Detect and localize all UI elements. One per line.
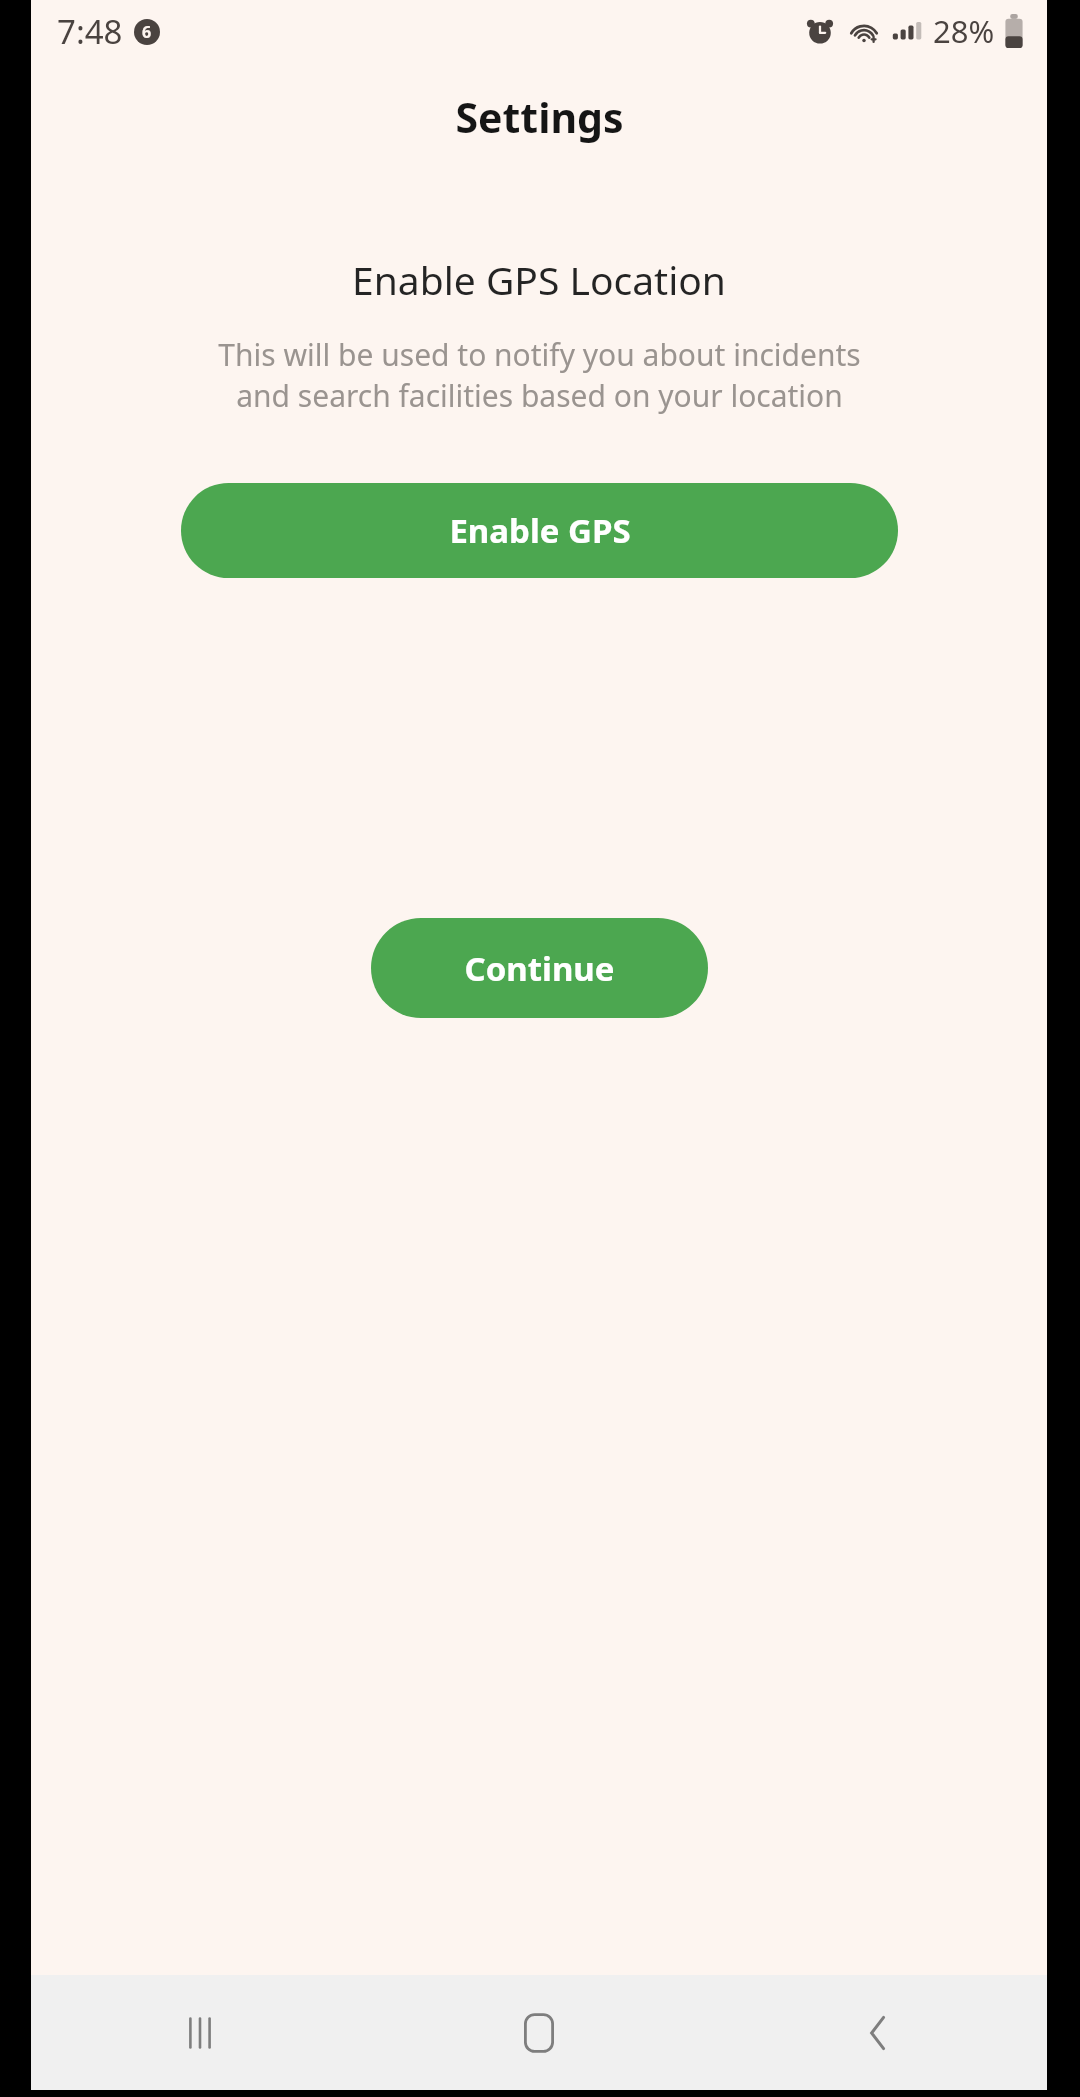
staticText: Enable GPS Location <box>352 253 726 306</box>
staticText: This will be used to notify you about in… <box>218 334 861 416</box>
button[interactable]: Recent apps <box>31 1975 369 2090</box>
staticText: 28% <box>933 10 995 52</box>
button[interactable]: Back <box>708 1975 1047 2090</box>
button[interactable]: Continue <box>371 918 708 1018</box>
button[interactable]: Home <box>369 1975 708 2090</box>
staticText: Settings <box>455 89 624 145</box>
staticText: Enable GPS <box>449 508 631 553</box>
button[interactable]: Enable GPS <box>181 483 898 578</box>
staticText: 7:48 <box>57 9 123 54</box>
staticText: 6 <box>142 21 152 43</box>
staticText: Continue <box>464 946 615 991</box>
